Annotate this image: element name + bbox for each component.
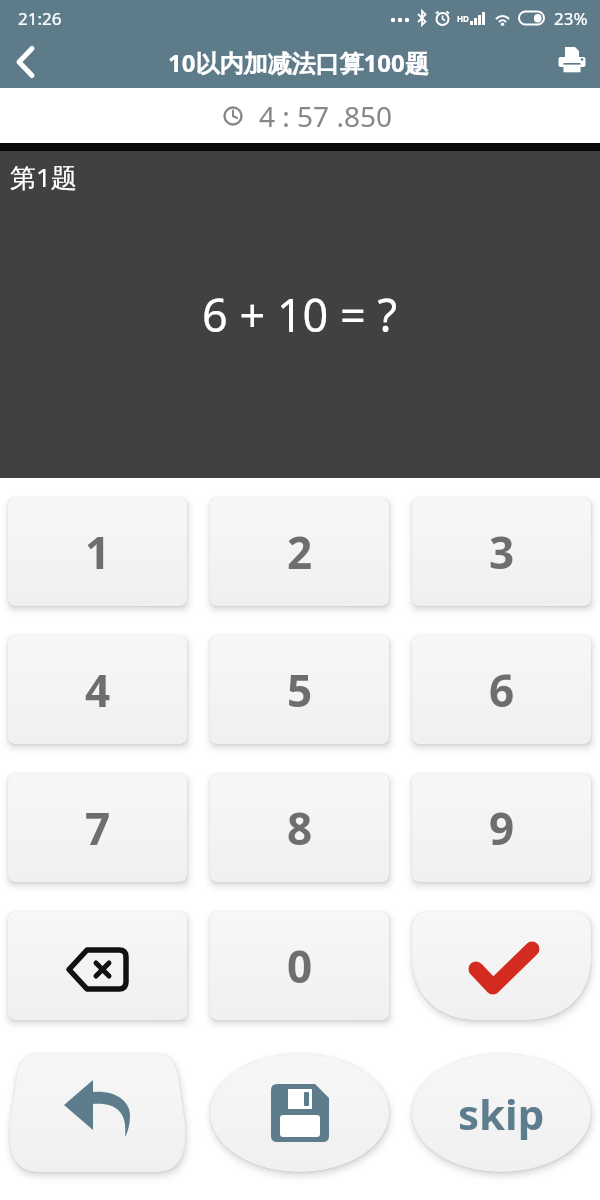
staticText: 10以内加减法口算100题 <box>168 46 429 79</box>
staticText: skip <box>458 1085 545 1142</box>
button[interactable]: 7 <box>8 774 187 882</box>
button[interactable]: 9 <box>412 774 591 882</box>
button[interactable] <box>210 1054 389 1172</box>
button[interactable]: 0 <box>210 912 389 1020</box>
button[interactable] <box>412 912 591 1020</box>
button[interactable]: 6 <box>412 636 591 744</box>
staticText: 第1题 <box>10 159 77 195</box>
staticText: 9 <box>489 798 515 858</box>
button[interactable] <box>0 36 52 88</box>
button[interactable]: 5 <box>210 636 389 744</box>
staticText: 5 <box>287 660 313 720</box>
button[interactable]: 2 <box>210 498 389 606</box>
staticText: 6 + 10 = ? <box>202 284 398 345</box>
button[interactable]: 4 <box>8 636 187 744</box>
staticText: 1 <box>85 522 111 582</box>
button[interactable]: 1 <box>8 498 187 606</box>
button[interactable]: 8 <box>210 774 389 882</box>
staticText: 7 <box>85 798 111 858</box>
staticText: 21:26 <box>18 7 62 30</box>
staticText: 8 <box>287 798 313 858</box>
button[interactable]: skip <box>412 1054 591 1172</box>
staticText: 6 <box>489 660 515 720</box>
button[interactable] <box>8 912 187 1020</box>
staticText: 4 : 57 .850 <box>259 97 392 135</box>
staticText: 23% <box>554 7 588 30</box>
staticText: 4 <box>85 660 111 720</box>
staticText: 0 <box>287 936 313 996</box>
staticText: 2 <box>287 522 313 582</box>
staticText: HD <box>457 13 469 24</box>
button[interactable]: 3 <box>412 498 591 606</box>
staticText: 3 <box>489 522 515 582</box>
button[interactable] <box>544 36 600 88</box>
button[interactable] <box>8 1054 187 1172</box>
